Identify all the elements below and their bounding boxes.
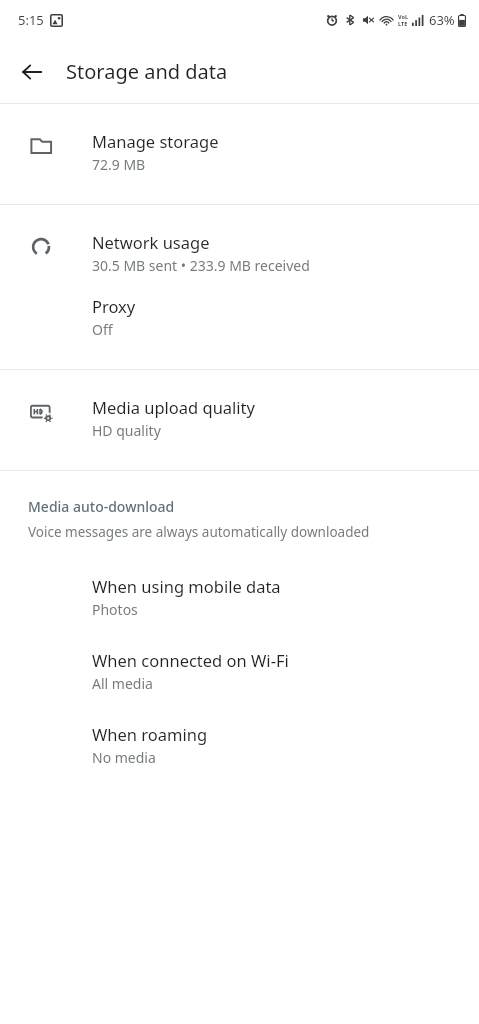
button[interactable]: When connected on Wi-Fi [0,641,479,715]
other: Network usage [28,234,54,260]
staticText: When connected on Wi-Fi [92,649,289,671]
button[interactable]: Manage storage [0,104,479,204]
staticText: Media upload quality [92,396,255,418]
staticText: Voice messages are always automatically … [28,523,370,541]
staticText: 72.9 MB [92,155,146,174]
staticText: LTE [398,20,408,27]
staticText: No media [92,748,156,767]
staticText: Off [92,320,113,339]
staticText: When roaming [92,723,208,745]
staticText: When using mobile data [92,575,281,597]
staticText: Manage storage [92,130,219,152]
staticText: Storage and data [66,58,228,85]
button[interactable]: Network usage [0,205,479,289]
staticText: 30.5 MB sent • 233.9 MB received [92,256,310,275]
staticText: All media [92,674,153,693]
other: Media upload quality [28,399,54,425]
staticText: Proxy [92,295,136,317]
button[interactable]: When roaming [0,715,479,789]
staticText: Photos [92,600,138,619]
button[interactable]: Proxy [0,289,479,369]
button[interactable]: Back [10,50,54,94]
button[interactable]: Media upload quality [0,370,479,470]
other: Manage storage [28,133,54,159]
staticText: 63% [429,11,455,29]
button[interactable]: When using mobile data [0,567,479,641]
staticText: Network usage [92,231,210,253]
staticText: 5:15 [18,11,44,29]
staticText: VoL [398,13,408,20]
staticText: HD quality [92,421,161,440]
staticText: Media auto-download [28,497,175,516]
